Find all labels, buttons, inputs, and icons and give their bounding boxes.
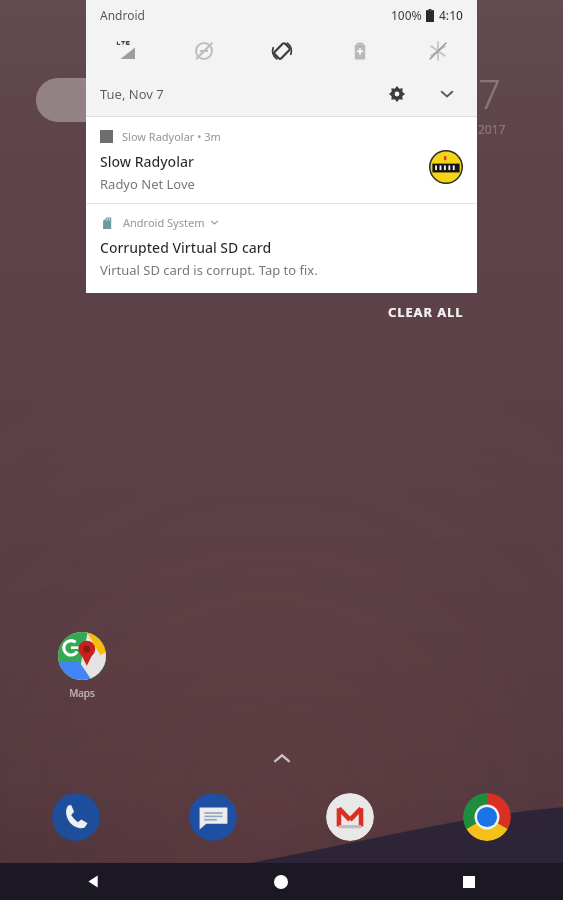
button[interactable]: CLEAR ALL xyxy=(378,298,474,326)
staticText: Corrupted Virtual SD card xyxy=(100,238,272,257)
button[interactable]: Recent apps xyxy=(375,863,563,900)
button[interactable]: Flashlight xyxy=(399,30,477,72)
button[interactable]: Settings xyxy=(381,78,413,110)
button[interactable]: Home xyxy=(187,863,375,900)
staticText: Slow Radyolar xyxy=(100,152,194,171)
button[interactable]: Google Search xyxy=(36,78,156,122)
button[interactable]: Open app drawer xyxy=(267,744,297,774)
button[interactable]: Do not disturb xyxy=(165,30,243,72)
staticText: Radyo Net Love xyxy=(100,175,195,193)
button[interactable]: Slow Radyolar • 3m xyxy=(86,117,477,203)
button[interactable]: Maps xyxy=(58,632,106,700)
button[interactable]: Gmail xyxy=(326,793,374,841)
staticText: Android xyxy=(100,7,145,23)
button[interactable]: Back xyxy=(0,863,187,900)
staticText: Virtual SD card is corrupt. Tap to fix. xyxy=(100,261,318,279)
button[interactable]: Expand quick settings xyxy=(431,78,463,110)
staticText: CLEAR ALL xyxy=(388,303,464,321)
staticText: 4:10 xyxy=(439,7,463,23)
button[interactable]: Mobile data xyxy=(86,30,165,72)
button[interactable]: Messages xyxy=(189,793,237,841)
staticText: 2017 xyxy=(478,121,506,137)
staticText: Tue, Nov 7 xyxy=(100,85,164,103)
staticText: Slow Radyolar • 3m xyxy=(122,129,221,144)
button[interactable]: Android System xyxy=(86,204,477,293)
staticText: 100% xyxy=(391,7,422,23)
button[interactable]: Chrome xyxy=(463,793,511,841)
button[interactable]: Phone xyxy=(52,793,100,841)
button[interactable]: Auto-rotate xyxy=(243,30,321,72)
button[interactable]: Battery saver xyxy=(321,30,399,72)
staticText: Android System xyxy=(123,215,205,230)
staticText: 7 xyxy=(478,66,501,120)
staticText: Maps xyxy=(69,686,95,700)
